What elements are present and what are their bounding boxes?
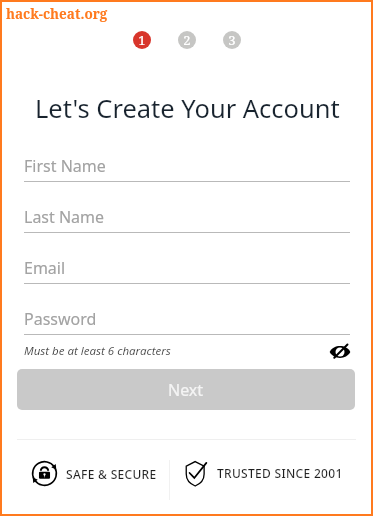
staticText: 1 [138, 31, 146, 49]
button[interactable]: 3 [223, 31, 241, 49]
staticText: Let's Create Your Account [35, 91, 340, 126]
staticText: 2 [183, 31, 191, 49]
button[interactable]: Email [0, 254, 373, 284]
staticText: SAFE & SECURE [66, 466, 157, 482]
button[interactable]: Password [0, 305, 373, 335]
button[interactable]: Next [17, 369, 355, 410]
button[interactable]: First Name [0, 152, 373, 182]
staticText: hack-cheat.org [6, 5, 108, 23]
staticText: Must be at least 6 characters [24, 343, 171, 359]
staticText: First Name [24, 155, 106, 177]
staticText: 3 [228, 31, 236, 49]
staticText: Email [24, 257, 66, 279]
button[interactable]: 2 [178, 31, 196, 49]
staticText: Last Name [24, 206, 105, 228]
button[interactable]: Last Name [0, 203, 373, 233]
staticText: Password [24, 308, 97, 330]
button[interactable]: Show password [328, 340, 352, 364]
button[interactable]: 1 [133, 31, 151, 49]
staticText: TRUSTED SINCE 2001 [217, 465, 343, 481]
staticText: Next [168, 379, 204, 401]
